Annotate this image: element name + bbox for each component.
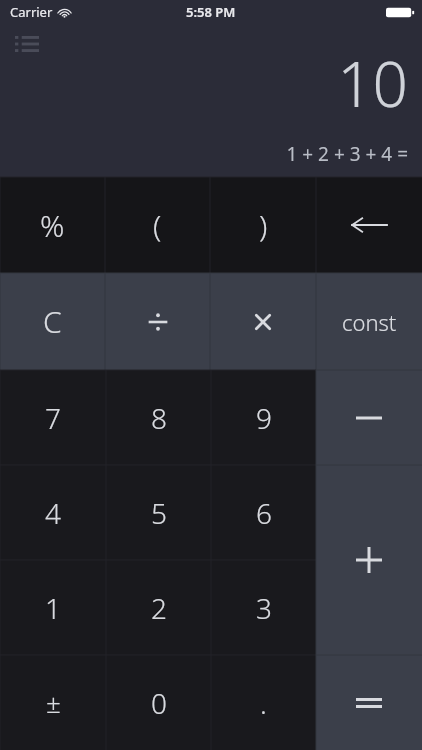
button[interactable]: 1 (0, 560, 106, 655)
staticText: 6 (256, 494, 272, 532)
button[interactable]: const (316, 273, 422, 370)
button[interactable]: 5 (106, 465, 211, 560)
staticText: const (342, 307, 397, 337)
button[interactable]: Plus (316, 465, 422, 655)
staticText: ( (153, 205, 162, 246)
button[interactable]: 9 (211, 370, 316, 465)
button[interactable]: Divide (105, 273, 210, 370)
button[interactable]: 8 (106, 370, 211, 465)
staticText: C (43, 301, 62, 342)
button[interactable]: History (8, 30, 46, 58)
staticText: Carrier (10, 3, 53, 21)
button[interactable]: ( (105, 177, 210, 273)
button[interactable]: Backspace (316, 177, 422, 273)
staticText: 8 (151, 399, 167, 437)
staticText: % (40, 205, 65, 246)
staticText: 2 (151, 589, 167, 627)
staticText: 1 + 2 + 3 + 4 = (286, 141, 408, 167)
button[interactable]: 6 (211, 465, 316, 560)
button[interactable]: . (211, 655, 316, 750)
staticText: 3 (256, 589, 272, 627)
staticText: 10 (337, 41, 408, 125)
button[interactable]: 4 (0, 465, 106, 560)
button[interactable]: Minus (316, 370, 422, 465)
button[interactable]: 0 (106, 655, 211, 750)
button[interactable]: Equals (316, 655, 422, 750)
button[interactable]: ) (210, 177, 316, 273)
staticText: 4 (45, 494, 61, 532)
button[interactable]: ± (0, 655, 106, 750)
staticText: 7 (45, 399, 61, 437)
button[interactable]: C (0, 273, 105, 370)
button[interactable]: % (0, 177, 105, 273)
staticText: . (260, 684, 267, 722)
staticText: 9 (256, 399, 272, 437)
staticText: ± (46, 685, 61, 720)
button[interactable]: Multiply (210, 273, 316, 370)
staticText: 5:58 PM (186, 3, 236, 21)
button[interactable]: 3 (211, 560, 316, 655)
button[interactable]: 2 (106, 560, 211, 655)
staticText: 5 (151, 494, 167, 532)
button[interactable]: 7 (0, 370, 106, 465)
staticText: 1 (45, 589, 61, 627)
staticText: ) (259, 205, 268, 246)
staticText: 0 (151, 684, 167, 722)
